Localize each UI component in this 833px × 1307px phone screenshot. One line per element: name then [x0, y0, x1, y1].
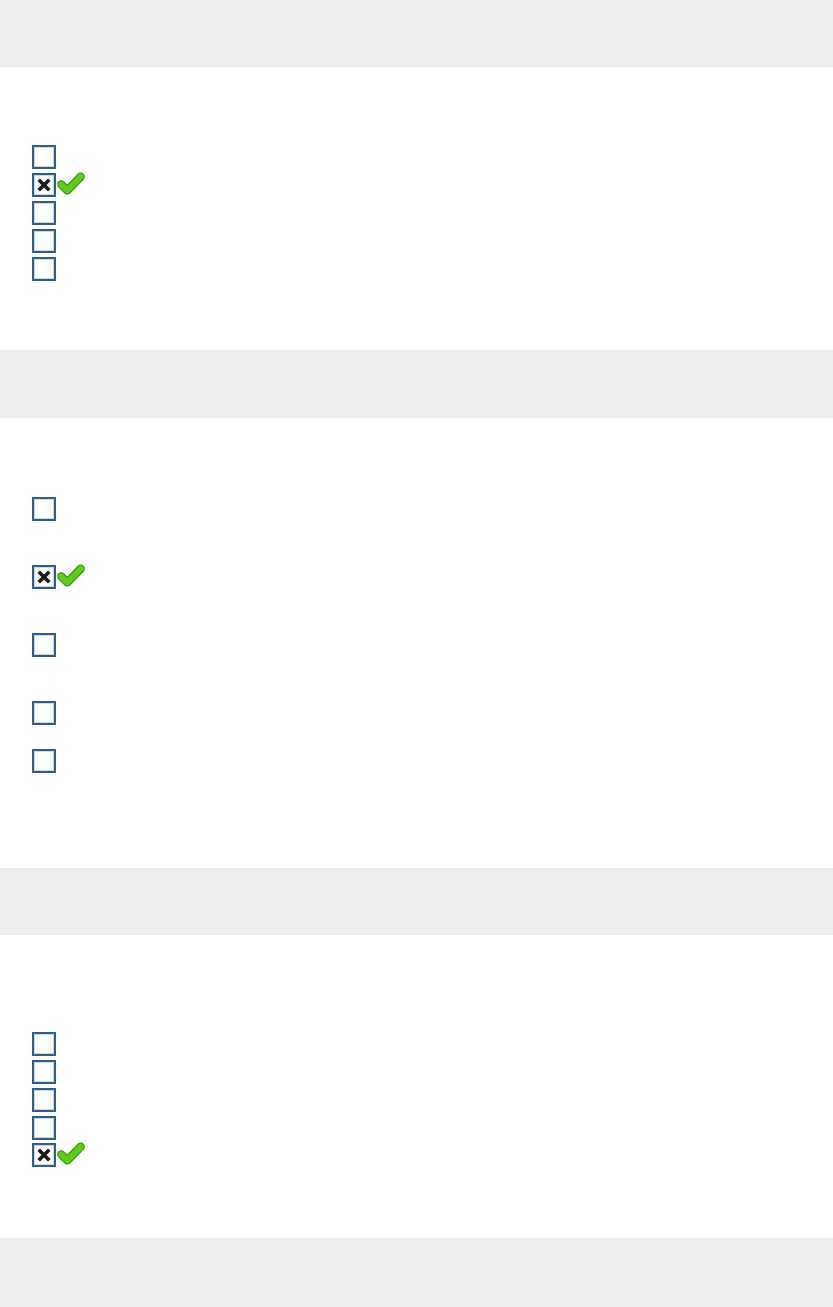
button[interactable]: Option 4	[32, 229, 56, 253]
button[interactable]: Answer 5	[32, 1143, 56, 1167]
button[interactable]: Option 3	[32, 201, 56, 225]
button[interactable]: Answer 3	[32, 1088, 56, 1112]
button[interactable]: Option 5	[32, 257, 56, 281]
button[interactable]: Choice 1	[32, 497, 56, 521]
other: Correct	[60, 566, 82, 586]
button[interactable]: Answer 4	[32, 1116, 56, 1140]
button[interactable]: Answer 1	[32, 1032, 56, 1056]
button[interactable]: Option 2	[32, 173, 56, 197]
button[interactable]: Option 1	[32, 145, 56, 169]
button[interactable]: Choice 5	[32, 749, 56, 773]
button[interactable]: Choice 4	[32, 701, 56, 725]
button[interactable]: Answer 2	[32, 1060, 56, 1084]
other: Correct	[60, 174, 82, 194]
button[interactable]: Choice 3	[32, 633, 56, 657]
button[interactable]: Choice 2	[32, 565, 56, 589]
other: Correct	[60, 1144, 82, 1164]
